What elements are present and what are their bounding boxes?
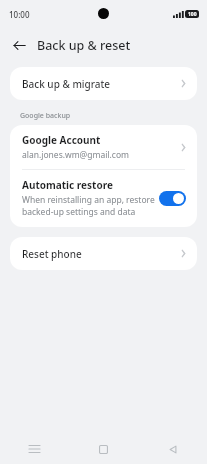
button[interactable]: Reset phone [10, 237, 197, 270]
button[interactable]: Google Account [10, 125, 197, 169]
staticText: Back up & reset [37, 37, 131, 54]
staticText: 100 [188, 11, 197, 18]
staticText: Reset phone [22, 247, 82, 261]
button[interactable]: Automatic restore [10, 170, 197, 227]
staticText: Automatic restore [22, 178, 113, 192]
staticText: Back up & migrate [22, 77, 111, 91]
staticText: Google backup [20, 111, 71, 121]
button[interactable]: Automatic restore [159, 191, 186, 206]
staticText: backed-up settings and data [22, 206, 136, 218]
button[interactable]: Back [6, 32, 32, 58]
button[interactable]: Back up & migrate [10, 67, 197, 100]
staticText: alan.jones.wm@gmail.com [22, 149, 130, 161]
staticText: When reinstalling an app, restore [22, 194, 155, 206]
button[interactable]: Back [138, 434, 207, 464]
staticText: 10:00 [9, 9, 30, 20]
button[interactable]: Home [69, 434, 138, 464]
staticText: Google Account [22, 133, 101, 147]
button[interactable]: Recent apps [0, 434, 69, 464]
